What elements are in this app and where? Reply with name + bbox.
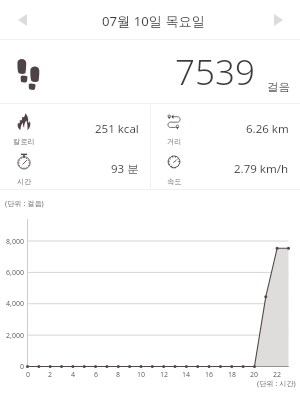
staticText: 7539: [175, 48, 255, 96]
button[interactable]: Next day: [263, 5, 293, 35]
staticText: 12: [154, 370, 174, 380]
staticText: 4: [63, 370, 83, 380]
staticText: 22: [267, 370, 287, 380]
staticText: 6: [86, 370, 106, 380]
staticText: 2,000: [0, 331, 24, 341]
button[interactable]: Previous day: [7, 5, 37, 35]
staticText: 14: [176, 370, 196, 380]
button[interactable]: 칼로리: [0, 104, 150, 146]
staticText: 18: [222, 370, 242, 380]
staticText: 20: [244, 370, 264, 380]
button[interactable]: 시간: [0, 144, 150, 186]
button[interactable]: 속도: [150, 144, 300, 186]
staticText: 10: [131, 370, 151, 380]
staticText: 8,000: [0, 237, 24, 247]
staticText: (단위 : 걸음): [5, 198, 44, 208]
staticText: 칼로리: [13, 137, 35, 146]
staticText: 시간: [17, 177, 32, 186]
staticText: 4,000: [0, 299, 24, 309]
staticText: 6.26 km: [246, 121, 289, 137]
staticText: 거리: [167, 137, 182, 146]
staticText: 251 kcal: [95, 121, 139, 137]
staticText: 0: [0, 362, 24, 372]
staticText: 8: [108, 370, 128, 380]
staticText: (단위 : 시간): [257, 378, 296, 388]
staticText: 93 분: [111, 161, 139, 177]
staticText: 2: [40, 370, 60, 380]
staticText: 속도: [167, 177, 182, 186]
staticText: 6,000: [0, 268, 24, 278]
staticText: 07월 10일 목요일: [102, 12, 205, 30]
staticText: 걸음: [267, 80, 290, 94]
staticText: 16: [199, 370, 219, 380]
button[interactable]: 거리: [150, 104, 300, 146]
staticText: 0: [18, 370, 38, 380]
staticText: 2.79 km/h: [234, 161, 289, 177]
